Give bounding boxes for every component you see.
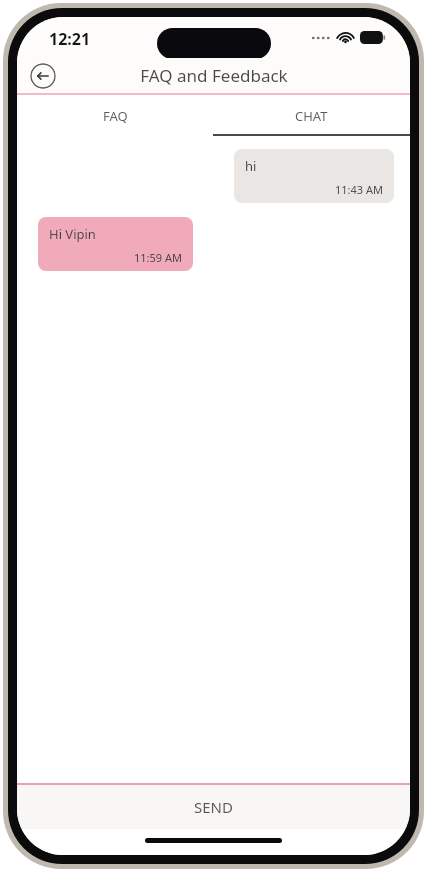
staticText: SEND (194, 797, 233, 817)
staticText: CHAT (295, 107, 328, 125)
staticText: 12:21 (49, 28, 91, 50)
button[interactable]: FAQ (17, 95, 213, 136)
staticText: 11:59 AM (134, 250, 182, 265)
staticText: FAQ and Feedback (140, 64, 288, 87)
button[interactable]: CHAT (213, 95, 410, 136)
staticText: FAQ (103, 107, 128, 125)
button[interactable]: SEND (17, 785, 410, 829)
staticText: 11:43 AM (335, 182, 383, 197)
button[interactable]: Back (30, 63, 56, 89)
button[interactable]: Hi Vipin (38, 217, 193, 271)
staticText: Hi Vipin (49, 225, 96, 243)
staticText: hi (245, 157, 257, 175)
button[interactable]: hi (234, 149, 394, 203)
